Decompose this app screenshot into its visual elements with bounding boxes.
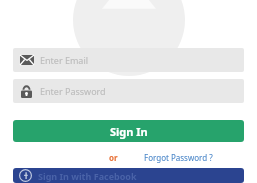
staticText: Enter Email <box>40 54 89 66</box>
other: Email <box>13 48 40 72</box>
staticText: Sign In <box>110 124 148 139</box>
button[interactable]: Password <box>13 79 244 103</box>
button[interactable]: Sign In <box>13 120 244 142</box>
other: Facebook <box>19 169 32 182</box>
staticText: Forgot Password ? <box>144 152 213 163</box>
button[interactable]: Forgot Password ? <box>144 152 213 163</box>
other: Password <box>13 79 40 103</box>
staticText: Sign In with Facebook <box>38 170 137 182</box>
button[interactable]: Email <box>13 48 244 72</box>
button[interactable]: Facebook <box>13 168 244 183</box>
staticText: or <box>109 152 118 163</box>
button[interactable]: or <box>109 152 118 163</box>
staticText: Enter Password <box>40 85 106 97</box>
